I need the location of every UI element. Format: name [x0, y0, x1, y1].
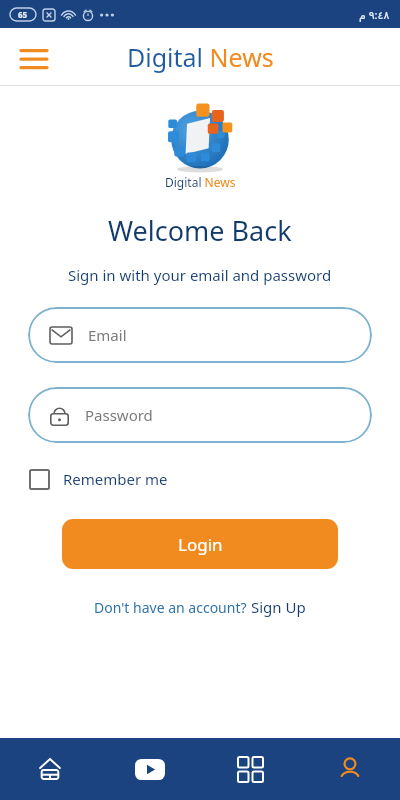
button[interactable]: Profile: [300, 738, 400, 800]
button[interactable]: Home: [0, 738, 100, 800]
staticText: ٩:٤٨ م: [359, 7, 390, 22]
button[interactable]: Remember me: [28, 465, 170, 493]
staticText: Sign in with your email and password: [68, 265, 332, 285]
staticText: Don't have an account?: [94, 598, 251, 617]
button[interactable]: Password: [28, 387, 372, 443]
button[interactable]: Videos: [100, 738, 200, 800]
staticText: Digital News: [165, 174, 236, 190]
button[interactable]: Don't have an account?: [86, 593, 314, 621]
staticText: Welcome Back: [108, 212, 292, 249]
staticText: Remember me: [63, 469, 168, 489]
button[interactable]: Categories: [200, 738, 300, 800]
staticText: Email: [88, 325, 127, 345]
staticText: Login: [178, 533, 223, 556]
staticText: 65: [18, 9, 28, 20]
staticText: Digital News: [127, 40, 274, 74]
staticText: Password: [85, 405, 153, 425]
button[interactable]: Email: [28, 307, 372, 363]
staticText: Sign Up: [251, 597, 306, 617]
button[interactable]: Login: [62, 519, 338, 569]
button[interactable]: Menu: [12, 35, 56, 79]
